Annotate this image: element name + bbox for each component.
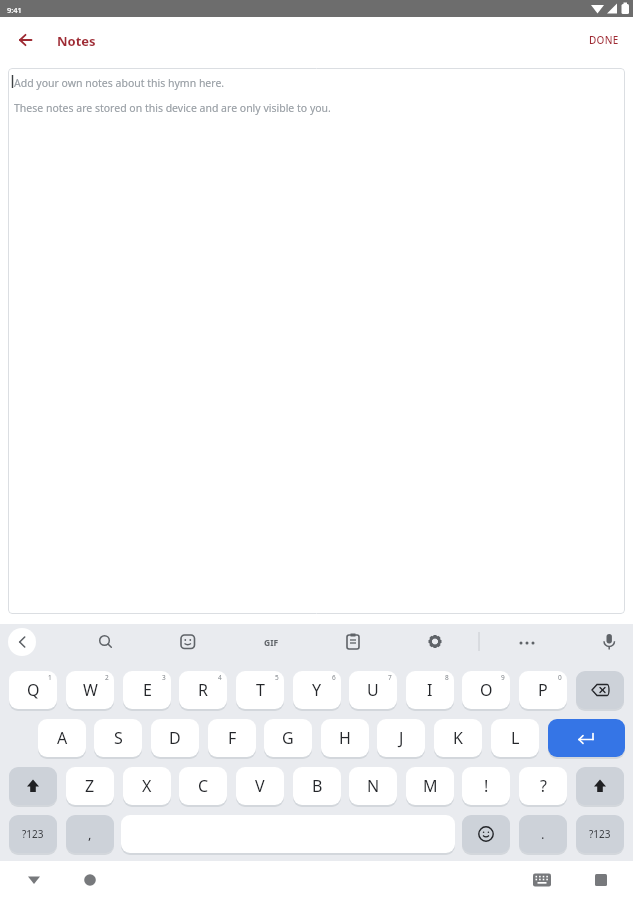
staticText: 7 bbox=[388, 673, 392, 682]
staticText: G bbox=[282, 727, 294, 749]
button[interactable]: T bbox=[236, 671, 284, 709]
button[interactable] bbox=[576, 767, 624, 805]
staticText: E bbox=[143, 679, 152, 701]
button[interactable]: U bbox=[349, 671, 397, 709]
staticText: R bbox=[198, 679, 208, 701]
button[interactable]: B bbox=[293, 767, 341, 805]
button[interactable]: ?123 bbox=[576, 815, 624, 853]
staticText: Notes bbox=[57, 32, 96, 50]
button[interactable] bbox=[9, 24, 41, 56]
button[interactable]: Y bbox=[293, 671, 341, 709]
button[interactable]: ?123 bbox=[9, 815, 57, 853]
button[interactable] bbox=[576, 671, 624, 709]
staticText: 2 bbox=[105, 673, 109, 682]
button[interactable]: V bbox=[236, 767, 284, 805]
button[interactable]: H bbox=[321, 719, 369, 757]
button[interactable]: C bbox=[179, 767, 227, 805]
button[interactable]: ? bbox=[519, 767, 567, 805]
staticText: D bbox=[169, 727, 181, 749]
button[interactable] bbox=[20, 866, 48, 894]
button[interactable]: D bbox=[151, 719, 199, 757]
button[interactable] bbox=[528, 866, 556, 894]
staticText: C bbox=[198, 775, 209, 797]
button[interactable]: M bbox=[406, 767, 454, 805]
staticText: X bbox=[142, 775, 152, 797]
staticText: H bbox=[339, 727, 351, 749]
staticText: A bbox=[57, 727, 68, 749]
staticText: T bbox=[256, 679, 265, 701]
button[interactable]: Z bbox=[66, 767, 114, 805]
staticText: 9:41 bbox=[7, 5, 22, 15]
staticText: 8 bbox=[445, 673, 449, 682]
button[interactable]: E bbox=[123, 671, 171, 709]
staticText: L bbox=[511, 727, 520, 749]
staticText: Y bbox=[312, 679, 322, 701]
button[interactable]: DONE bbox=[580, 28, 628, 52]
staticText: ! bbox=[484, 775, 489, 797]
staticText: ? bbox=[540, 775, 547, 797]
staticText: 5 bbox=[275, 673, 279, 682]
button[interactable] bbox=[462, 815, 510, 853]
staticText: . bbox=[541, 825, 545, 843]
staticText: ?123 bbox=[589, 827, 611, 841]
button[interactable] bbox=[8, 628, 36, 656]
staticText: B bbox=[312, 775, 323, 797]
staticText: 1 bbox=[48, 673, 52, 682]
staticText: I bbox=[427, 679, 433, 701]
button[interactable]: G bbox=[264, 719, 312, 757]
button[interactable]: F bbox=[208, 719, 256, 757]
staticText: , bbox=[88, 825, 92, 843]
button[interactable]: L bbox=[491, 719, 539, 757]
staticText: 3 bbox=[162, 673, 166, 682]
staticText: M bbox=[423, 775, 438, 797]
button[interactable]: O bbox=[462, 671, 510, 709]
staticText: 4 bbox=[218, 673, 222, 682]
staticText: U bbox=[367, 679, 379, 701]
button[interactable]: R bbox=[179, 671, 227, 709]
staticText: S bbox=[114, 727, 123, 749]
button[interactable]: W bbox=[66, 671, 114, 709]
button[interactable]: A bbox=[38, 719, 86, 757]
staticText: Add your own notes about this hymn here. bbox=[14, 76, 225, 90]
staticText: P bbox=[538, 679, 548, 701]
staticText: 6 bbox=[332, 673, 336, 682]
button[interactable]: Q bbox=[9, 671, 57, 709]
button[interactable]: P bbox=[519, 671, 567, 709]
button[interactable]: S bbox=[94, 719, 142, 757]
staticText: W bbox=[83, 679, 98, 701]
button[interactable]: Add your own notes about this hymn here. bbox=[8, 68, 625, 614]
button[interactable]: X bbox=[123, 767, 171, 805]
staticText: J bbox=[399, 727, 404, 749]
staticText: O bbox=[480, 679, 493, 701]
staticText: GIF bbox=[264, 637, 279, 649]
staticText: K bbox=[453, 727, 463, 749]
button[interactable] bbox=[9, 767, 57, 805]
staticText: These notes are stored on this device an… bbox=[14, 101, 331, 115]
button[interactable] bbox=[587, 866, 615, 894]
button[interactable]: . bbox=[519, 815, 567, 853]
staticText: N bbox=[367, 775, 380, 797]
button[interactable]: K bbox=[434, 719, 482, 757]
button[interactable]: N bbox=[349, 767, 397, 805]
button[interactable] bbox=[76, 866, 104, 894]
staticText: Z bbox=[85, 775, 95, 797]
staticText: DONE bbox=[589, 33, 619, 47]
button[interactable]: J bbox=[377, 719, 425, 757]
button[interactable]: ! bbox=[462, 767, 510, 805]
staticText: F bbox=[228, 727, 237, 749]
button[interactable]: I bbox=[406, 671, 454, 709]
staticText: V bbox=[255, 775, 265, 797]
button[interactable]: , bbox=[66, 815, 114, 853]
staticText: 9 bbox=[501, 673, 505, 682]
button[interactable] bbox=[548, 719, 625, 757]
staticText: 0 bbox=[558, 673, 562, 682]
staticText: Q bbox=[27, 679, 40, 701]
staticText: ?123 bbox=[22, 827, 44, 841]
